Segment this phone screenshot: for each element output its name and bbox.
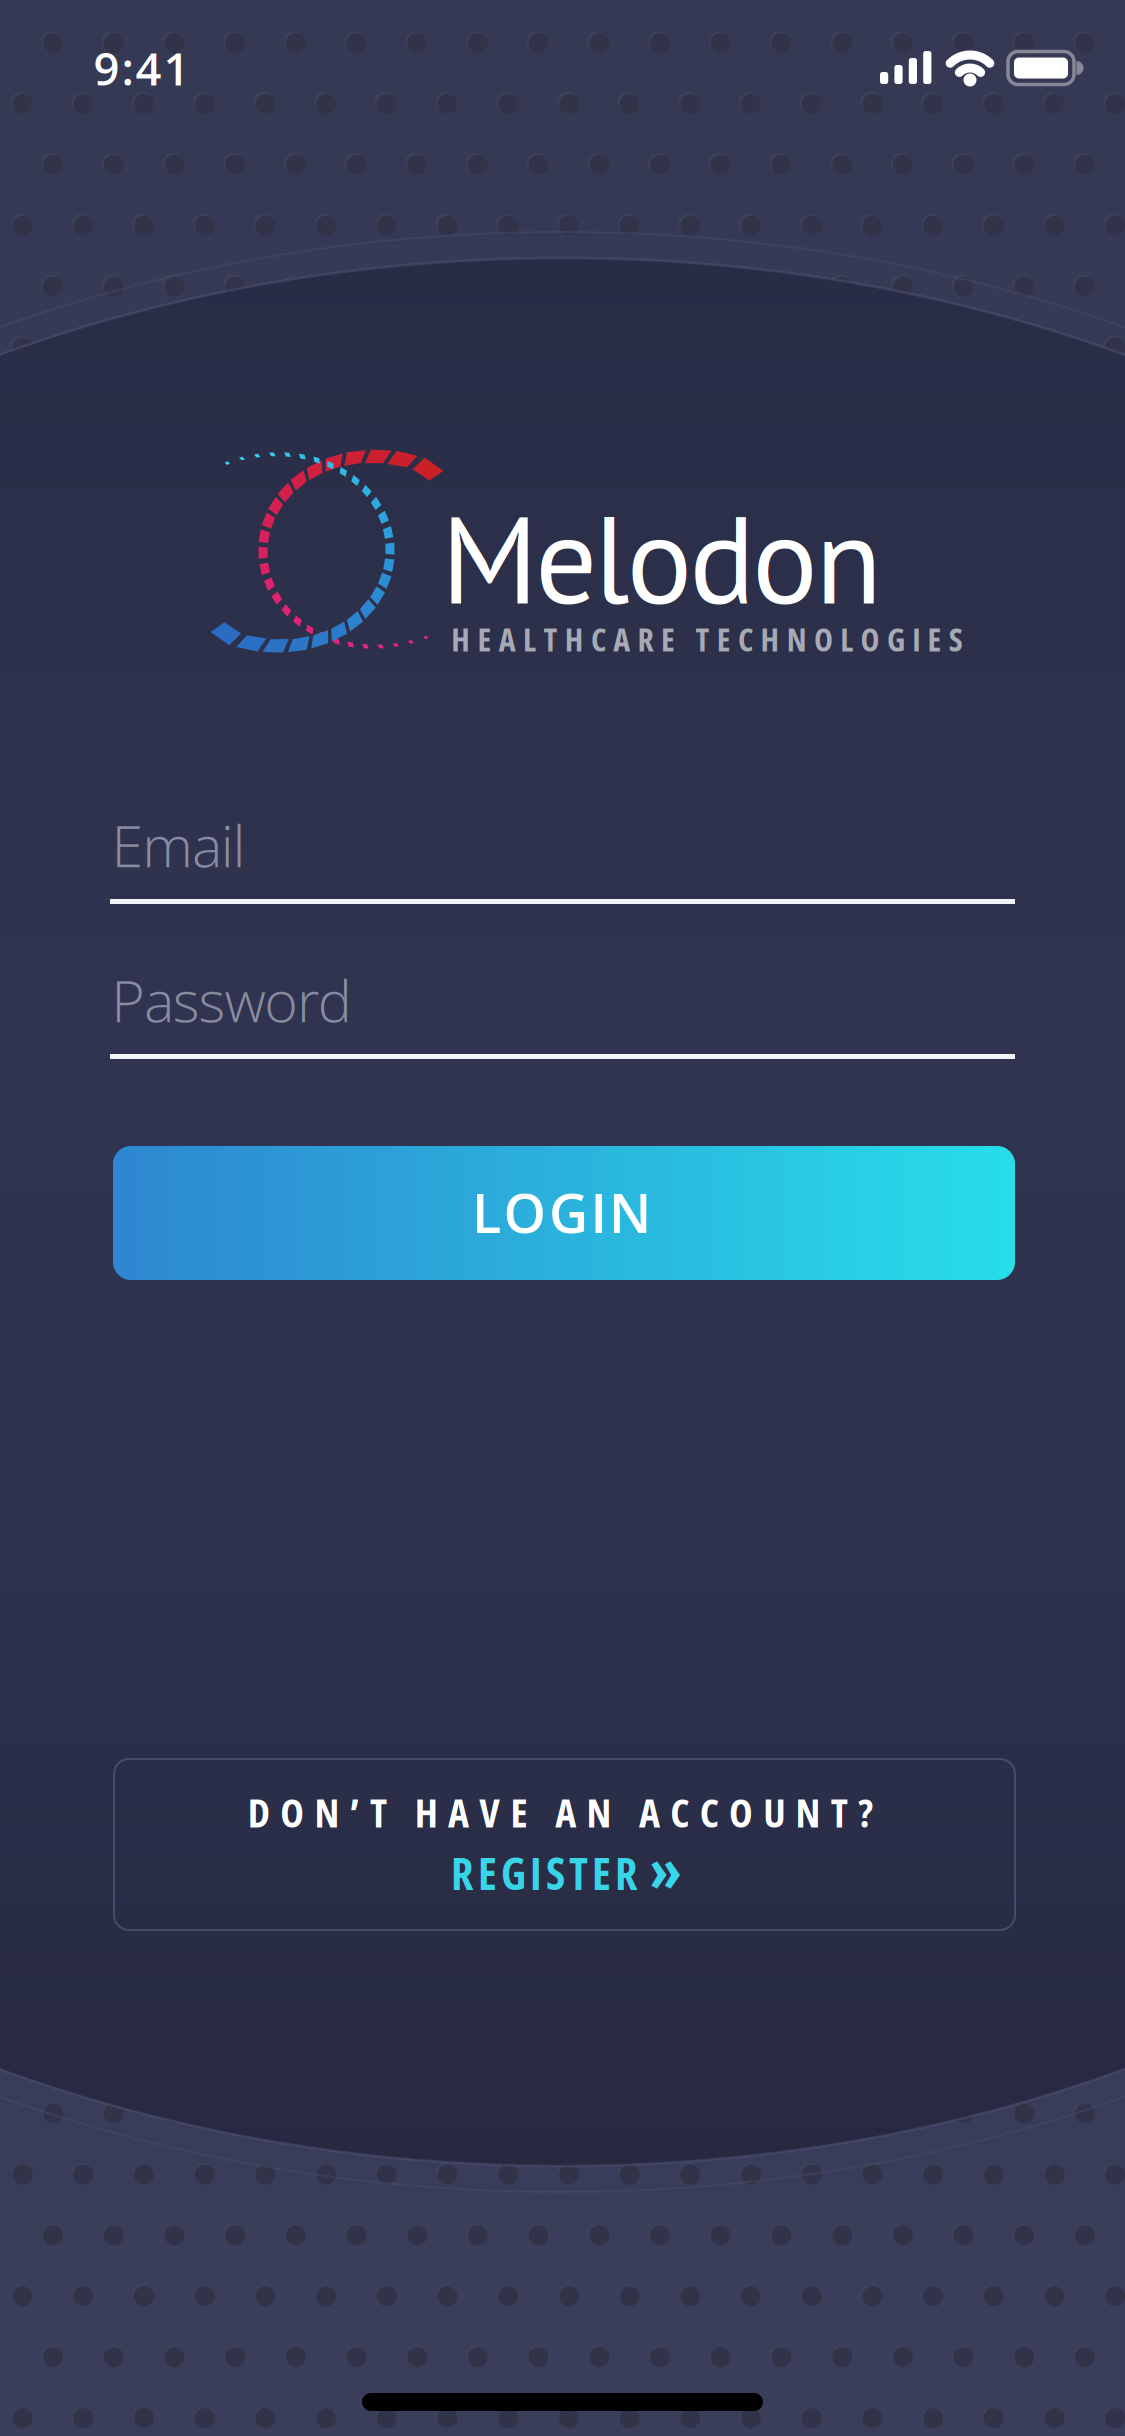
staticText: LOGIN bbox=[472, 1175, 651, 1249]
staticText: I bbox=[530, 1843, 542, 1903]
button[interactable]: Email bbox=[110, 800, 1015, 915]
staticText: S bbox=[546, 1843, 565, 1903]
button[interactable]: LOGIN bbox=[113, 1146, 1015, 1280]
staticText: Password bbox=[111, 961, 352, 1039]
staticText: E bbox=[478, 1843, 497, 1903]
staticText: DON’T HAVE AN ACCOUNT? bbox=[248, 1785, 873, 1839]
staticText: Melodon bbox=[441, 479, 882, 637]
staticText: R bbox=[451, 1843, 474, 1903]
staticText: 9:41 bbox=[93, 37, 189, 99]
staticText: Email bbox=[111, 806, 246, 884]
staticText: R bbox=[615, 1843, 638, 1903]
staticText: HEALTHCARE TECHNOLOGIES bbox=[451, 617, 963, 661]
staticText: T bbox=[569, 1843, 588, 1903]
staticText: G bbox=[501, 1843, 526, 1903]
staticText: » bbox=[649, 1826, 681, 1910]
button[interactable]: Password bbox=[110, 955, 1015, 1070]
button[interactable]: DON’T HAVE AN ACCOUNT? bbox=[114, 1759, 1015, 1930]
staticText: E bbox=[592, 1843, 611, 1903]
